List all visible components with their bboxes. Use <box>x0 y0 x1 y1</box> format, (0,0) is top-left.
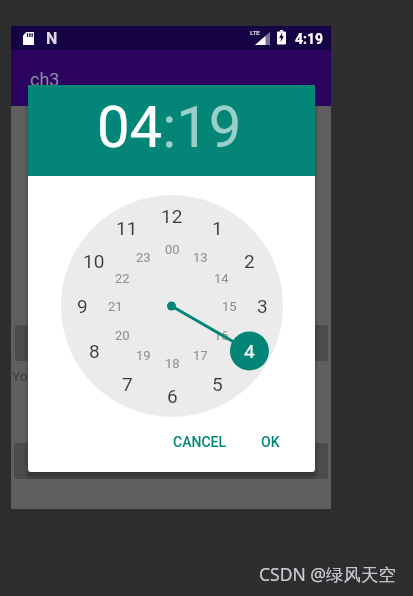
button[interactable]: 4 <box>219 336 279 366</box>
button[interactable]: 17 <box>170 340 230 370</box>
button[interactable]: 3 <box>232 291 292 321</box>
staticText: 23 <box>136 250 151 265</box>
button[interactable]: 13 <box>170 242 230 272</box>
staticText: 17 <box>193 348 208 363</box>
staticText: 3 <box>257 295 268 317</box>
staticText: 00 <box>165 242 180 257</box>
button[interactable]: 5 <box>187 369 247 399</box>
button[interactable]: 1 <box>187 213 247 243</box>
staticText: LTE <box>250 29 260 36</box>
button[interactable]: OK <box>244 423 296 461</box>
staticText: Yo <box>12 368 28 384</box>
staticText: 04:19 <box>97 93 242 161</box>
staticText: 6 <box>167 385 178 407</box>
staticText: 15 <box>222 299 237 314</box>
staticText: 2 <box>244 250 255 272</box>
staticText: 12 <box>161 205 183 227</box>
button[interactable]: 8 <box>64 336 124 366</box>
button[interactable]: 00 <box>142 234 202 264</box>
button[interactable]: 10 <box>64 246 124 276</box>
staticText: 4:19 <box>295 31 324 47</box>
button[interactable]: 14 <box>191 263 251 293</box>
staticText: 16 <box>214 328 229 343</box>
button[interactable]: 12 <box>142 201 202 231</box>
staticText: 22 <box>115 271 130 286</box>
staticText: ch3 <box>30 69 60 90</box>
button[interactable]: 15 <box>199 291 259 321</box>
button[interactable]: 6 <box>142 381 202 411</box>
staticText: 20 <box>115 328 130 343</box>
button[interactable]: 23 <box>113 242 173 272</box>
staticText: N <box>46 29 58 48</box>
button[interactable]: 18 <box>142 348 202 378</box>
staticText: CANCEL <box>173 434 227 450</box>
staticText: 9 <box>77 295 88 317</box>
button[interactable]: 16 <box>191 320 251 350</box>
button[interactable]: 9 <box>52 291 112 321</box>
staticText: 10 <box>83 250 105 272</box>
staticText: 5 <box>212 373 223 395</box>
staticText: 7 <box>122 373 133 395</box>
button[interactable]: 21 <box>85 291 145 321</box>
button[interactable]: 22 <box>92 263 152 293</box>
button[interactable]: 19 <box>113 340 173 370</box>
staticText: 14 <box>214 271 229 286</box>
staticText: 18 <box>165 356 180 371</box>
button[interactable]: 7 <box>97 369 157 399</box>
staticText: 4 <box>244 340 255 362</box>
staticText: OK <box>261 434 280 450</box>
staticText: 19 <box>136 348 151 363</box>
button[interactable]: 11 <box>97 213 157 243</box>
staticText: 11 <box>116 217 138 239</box>
button[interactable]: 20 <box>92 320 152 350</box>
button[interactable]: CANCEL <box>168 423 232 461</box>
staticText: 1 <box>212 217 223 239</box>
button[interactable]: 2 <box>219 246 279 276</box>
staticText: 13 <box>193 250 208 265</box>
staticText: CSDN @绿风天空 <box>259 562 397 586</box>
staticText: 8 <box>89 340 100 362</box>
staticText: 21 <box>108 299 123 314</box>
